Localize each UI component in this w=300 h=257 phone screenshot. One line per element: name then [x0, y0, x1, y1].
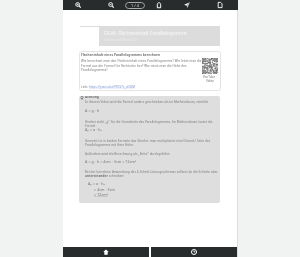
staticText: Video: [206, 79, 214, 83]
button[interactable]: Zoom in: [73, 0, 83, 10]
button[interactable]: Recent: [151, 247, 237, 257]
button[interactable]: Document: [215, 0, 225, 10]
staticText: Aₚ = a · hₐ: [85, 127, 102, 132]
staticText: YouTube: [203, 75, 216, 79]
button[interactable]: Home: [63, 247, 149, 257]
staticText: Wie berechnet man den Flächeninhalt eine…: [81, 59, 202, 63]
staticText: 1 / 4: [131, 3, 140, 8]
button[interactable]: Flächeninhalt eines Parallelogramms bere…: [79, 51, 221, 91]
staticText: https://youtu.be/PIKS7s_xDOM: [89, 85, 136, 89]
staticText: Aₚ = a · hₐ: [88, 181, 105, 186]
staticText: A = g · h: [85, 108, 100, 113]
staticText: Außerdem wird die Berechnung als „Kette"…: [85, 152, 171, 156]
staticText: schreiben:: [108, 174, 125, 178]
staticText: In diesem Video wird die Formel anders g…: [85, 100, 209, 104]
staticText: = 12cm²: [94, 192, 109, 197]
staticText: A = g · h = 4cm · 3cm = 12cm²: [85, 159, 137, 164]
staticText: Link:: [81, 85, 89, 89]
button[interactable]: Share: [182, 0, 192, 10]
staticText: untereinander: [85, 174, 108, 178]
staticText: Achtung: [85, 96, 99, 99]
button[interactable]: Zoom out: [106, 0, 116, 10]
staticText: = 4cm · 3cm: [94, 187, 115, 192]
staticText: Bei der korrekten Anwendung des 4-Schrit…: [85, 170, 218, 174]
button[interactable]: FILM: Flächeninhalt Parallelogramm: [80, 26, 220, 46]
staticText: Hierbei steht „g" für die Grundseite des…: [85, 120, 213, 124]
button[interactable]: Achtung: [79, 96, 220, 203]
staticText: Flächeninhalt eines Parallelogramms bere…: [81, 53, 161, 57]
staticText: Formel aus der Formel für Rechtecke her?…: [81, 64, 187, 68]
staticText: FILM: Flächeninhalt Parallelogramm: [104, 30, 187, 37]
button[interactable]: 1 / 4: [125, 2, 145, 9]
staticText: Parallelogramms mit ihrer Höhe.: [85, 143, 134, 147]
staticText: Parallelogramms?: [81, 68, 108, 72]
button[interactable]: Bookmark: [154, 0, 164, 10]
staticText: Gemeint ist in beiden Formeln das Gleich…: [85, 139, 211, 143]
staticText: Formel: [85, 124, 96, 128]
